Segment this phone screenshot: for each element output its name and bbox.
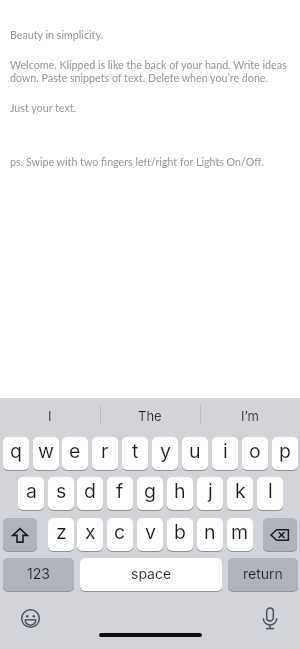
staticText: p — [279, 439, 291, 463]
button[interactable]: r — [92, 437, 118, 470]
button[interactable]: v — [137, 518, 163, 551]
staticText: u — [189, 439, 201, 463]
staticText: t — [132, 439, 139, 463]
button[interactable]: s — [48, 477, 74, 510]
staticText: s — [56, 479, 67, 503]
button[interactable]: q — [3, 437, 29, 470]
button[interactable]: a — [18, 477, 44, 510]
button[interactable]: u — [182, 437, 208, 470]
button[interactable]: g — [137, 477, 163, 510]
staticText: The — [138, 408, 162, 424]
staticText: k — [235, 479, 246, 503]
button[interactable]: w — [33, 437, 59, 470]
staticText: y — [160, 439, 171, 463]
staticText: e — [69, 439, 81, 463]
staticText: m — [231, 520, 249, 544]
button[interactable]: f — [107, 477, 133, 510]
staticText: b — [174, 520, 186, 544]
staticText: g — [144, 479, 156, 503]
button[interactable]: I — [0, 405, 100, 426]
staticText: r — [101, 439, 109, 463]
button[interactable]: t — [122, 437, 148, 470]
staticText: I’m — [241, 408, 259, 424]
staticText: return — [243, 565, 283, 582]
staticText: a — [26, 479, 37, 503]
staticText: Beauty in simplicity. — [10, 28, 104, 41]
staticText: f — [116, 479, 124, 503]
staticText: ps. Swipe with two fingers left/right fo… — [10, 155, 264, 168]
button[interactable]: d — [77, 477, 103, 510]
button[interactable]: b — [167, 518, 193, 551]
staticText: v — [145, 520, 156, 544]
staticText: l — [268, 479, 273, 503]
staticText: Just your text. — [10, 101, 77, 114]
staticText: space — [131, 565, 172, 582]
button[interactable]: m — [227, 518, 253, 551]
button[interactable]: c — [107, 518, 133, 551]
staticText: h — [174, 479, 186, 503]
button[interactable]: space — [80, 558, 222, 591]
button[interactable]: x — [77, 518, 103, 551]
button[interactable]: l — [257, 477, 283, 510]
staticText: w — [38, 439, 54, 463]
staticText: c — [114, 520, 126, 544]
button[interactable] — [263, 518, 297, 551]
button[interactable]: z — [48, 518, 74, 551]
button[interactable]: I’m — [200, 405, 300, 426]
staticText: Welcome. Klipped is like the back of you… — [10, 58, 287, 84]
staticText: d — [84, 479, 96, 503]
button[interactable]: y — [152, 437, 178, 470]
staticText: I — [48, 408, 52, 424]
staticText: n — [204, 520, 216, 544]
button[interactable] — [3, 518, 37, 551]
button[interactable]: return — [228, 558, 298, 591]
button[interactable]: o — [242, 437, 268, 470]
button[interactable]: j — [197, 477, 223, 510]
button[interactable]: n — [197, 518, 223, 551]
staticText: o — [249, 439, 261, 463]
staticText: x — [85, 520, 96, 544]
button[interactable] — [259, 606, 281, 632]
button[interactable]: h — [167, 477, 193, 510]
button[interactable] — [20, 608, 41, 629]
staticText: 123 — [27, 565, 50, 582]
button[interactable]: i — [212, 437, 238, 470]
button[interactable]: The — [100, 405, 200, 426]
staticText: z — [56, 520, 67, 544]
button[interactable]: p — [272, 437, 298, 470]
button[interactable]: 123 — [3, 558, 74, 591]
staticText: q — [10, 439, 22, 463]
staticText: i — [223, 439, 228, 463]
button[interactable]: k — [227, 477, 253, 510]
staticText: j — [208, 479, 213, 503]
button[interactable]: e — [62, 437, 88, 470]
